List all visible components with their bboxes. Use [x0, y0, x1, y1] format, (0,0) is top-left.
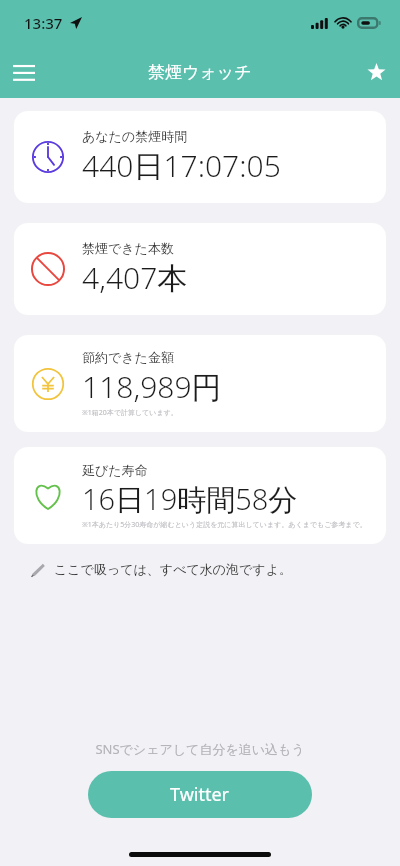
staticText: SNSでシェアして自分を追い込もう: [0, 740, 400, 758]
staticText: ※1本あたり5分30寿命が縮むという定説を元に算出しています。あくまでもご参考ま…: [82, 520, 367, 530]
staticText: 118,989円: [82, 366, 222, 407]
staticText: 13:37: [24, 13, 63, 33]
staticText: 440日17:07:05: [82, 145, 281, 186]
staticText: 禁煙できた本数: [82, 240, 174, 256]
staticText: 4,407本: [82, 257, 188, 298]
button[interactable]: 禁煙できた本数: [14, 223, 386, 315]
button[interactable]: ここで吸っては、すべて水の泡ですよ。: [30, 561, 400, 577]
staticText: 節約できた金額: [82, 349, 174, 365]
button[interactable]: Menu: [0, 48, 48, 96]
staticText: あなたの禁煙時間: [82, 128, 188, 144]
staticText: Twitter: [170, 782, 230, 807]
button[interactable]: あなたの禁煙時間: [14, 111, 386, 203]
button[interactable]: Favorite: [352, 48, 400, 96]
staticText: 延びた寿命: [82, 462, 148, 478]
button[interactable]: Twitter: [88, 771, 312, 818]
staticText: ※1箱20本で計算しています。: [82, 408, 178, 418]
staticText: ここで吸っては、すべて水の泡ですよ。: [54, 561, 292, 577]
button[interactable]: 延びた寿命: [14, 447, 386, 544]
staticText: 16日19時間58分: [82, 479, 298, 519]
button[interactable]: 節約できた金額: [14, 335, 386, 432]
staticText: 禁煙ウォッチ: [148, 62, 252, 83]
